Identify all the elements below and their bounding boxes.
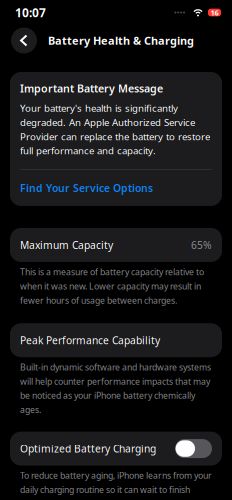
button[interactable]: Back xyxy=(11,27,37,53)
staticText: 16 xyxy=(210,7,218,18)
staticText: Maximum Capacity xyxy=(20,238,113,252)
staticText: This is a measure of battery capacity re… xyxy=(20,266,204,306)
button[interactable]: Find Your Service Options xyxy=(20,170,212,206)
staticText: Your battery's health is significantly d… xyxy=(20,101,210,157)
staticText: Important Battery Message xyxy=(20,81,163,95)
staticText: Find Your Service Options xyxy=(20,181,153,195)
staticText: Peak Performance Capability xyxy=(20,333,160,347)
staticText: To reduce battery aging, iPhone learns f… xyxy=(20,470,212,500)
staticText: 65% xyxy=(191,238,212,252)
staticText: 10:07 xyxy=(15,4,46,21)
staticText: Built-in dynamic software and hardware s… xyxy=(20,361,211,416)
staticText: Optimized Battery Charging xyxy=(20,442,156,456)
button[interactable]: Maximum Capacity xyxy=(0,228,232,262)
staticText: Battery Health & Charging xyxy=(48,33,194,48)
button[interactable]: Peak Performance Capability xyxy=(0,323,232,357)
button[interactable]: Optimized Battery Charging xyxy=(0,432,232,466)
